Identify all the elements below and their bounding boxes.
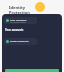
staticText: Email monitoring xyxy=(10,40,29,43)
button[interactable] xyxy=(5,69,59,72)
staticText: No issues found xyxy=(10,21,26,24)
staticText: Scan complete xyxy=(10,18,27,21)
button[interactable]: Email monitoring xyxy=(4,38,37,45)
staticText: Your accounts xyxy=(5,28,24,32)
button[interactable]: Scan complete xyxy=(4,17,37,24)
staticText: Identity xyxy=(9,5,26,10)
staticText: Protection xyxy=(9,10,30,15)
